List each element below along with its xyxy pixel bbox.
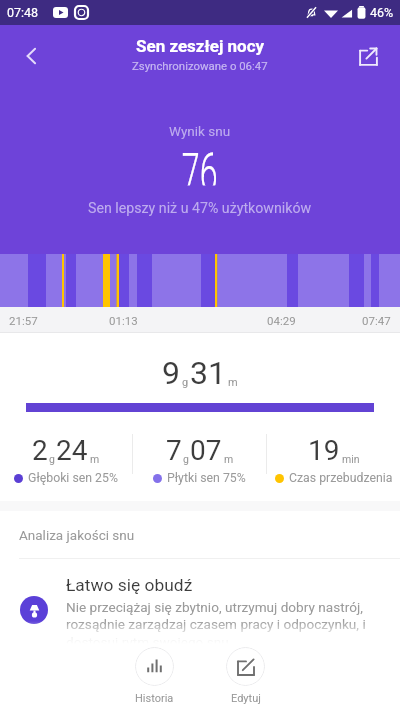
staticText: 07:48 xyxy=(7,5,39,20)
staticText: Historia xyxy=(135,692,174,705)
staticText: Analiza jakości snu xyxy=(19,527,135,543)
staticText: 21:57 xyxy=(9,314,38,327)
staticText: min xyxy=(342,453,360,465)
staticText: 07 xyxy=(190,434,222,467)
button[interactable]: Łatwo się obudź xyxy=(0,559,400,650)
staticText: 7 xyxy=(166,434,182,467)
staticText: g xyxy=(183,453,189,465)
staticText: 19 xyxy=(308,434,340,467)
staticText: 46% xyxy=(370,5,394,20)
staticText: Łatwo się obudź xyxy=(66,575,193,595)
staticText: Edytuj xyxy=(231,692,261,705)
staticText: m xyxy=(90,453,100,465)
staticText: g xyxy=(182,376,189,389)
button[interactable]: Edytuj xyxy=(220,643,271,709)
staticText: 04:29 xyxy=(267,314,296,327)
staticText: Zsynchronizowane o 06:47 xyxy=(132,59,268,72)
staticText: Sen lepszy niż u 47% użytkowników xyxy=(88,200,312,217)
staticText: g xyxy=(49,453,55,465)
button[interactable]: Historia xyxy=(129,643,180,709)
staticText: 76 xyxy=(182,141,218,185)
staticText: Sen zeszłej nocy xyxy=(136,36,265,56)
staticText: Czas przebudzenia xyxy=(289,471,393,485)
staticText: 31 xyxy=(190,354,226,392)
staticText: Wynik snu xyxy=(169,123,231,139)
staticText: 07:47 xyxy=(362,314,391,327)
staticText: 2 xyxy=(32,434,48,467)
staticText: 24 xyxy=(56,434,88,467)
staticText: 01:13 xyxy=(109,314,138,327)
staticText: Nie przeciążaj się zbytnio, utrzymuj dob… xyxy=(66,599,366,650)
staticText: Płytki sen 75% xyxy=(167,471,246,485)
staticText: 9 xyxy=(162,354,180,392)
button[interactable]: Back xyxy=(10,34,54,78)
button[interactable]: Share xyxy=(346,34,390,78)
staticText: Głęboki sen 25% xyxy=(28,471,118,485)
staticText: m xyxy=(224,453,234,465)
staticText: m xyxy=(228,376,238,389)
